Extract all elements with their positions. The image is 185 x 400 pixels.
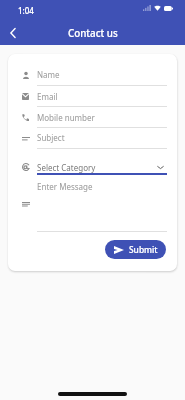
button[interactable]: Back xyxy=(3,23,23,43)
button[interactable]: Enter Message xyxy=(8,180,177,232)
staticText: Select Category xyxy=(37,162,96,173)
staticText: Contact us xyxy=(68,27,118,40)
staticText: Submit xyxy=(129,244,158,255)
button[interactable]: Select Category xyxy=(8,154,177,179)
button[interactable]: Mobile number xyxy=(8,107,177,128)
button[interactable]: Submit xyxy=(105,240,166,259)
staticText: Email xyxy=(37,91,58,102)
staticText: Mobile number xyxy=(37,112,95,123)
button[interactable]: Name xyxy=(8,65,177,86)
button[interactable]: Email xyxy=(8,86,177,107)
staticText: Name xyxy=(37,69,60,80)
staticText: 1:04 xyxy=(18,5,34,16)
staticText: Enter Message xyxy=(37,181,93,192)
staticText: Subject xyxy=(37,132,65,143)
button[interactable]: Subject xyxy=(8,128,177,149)
